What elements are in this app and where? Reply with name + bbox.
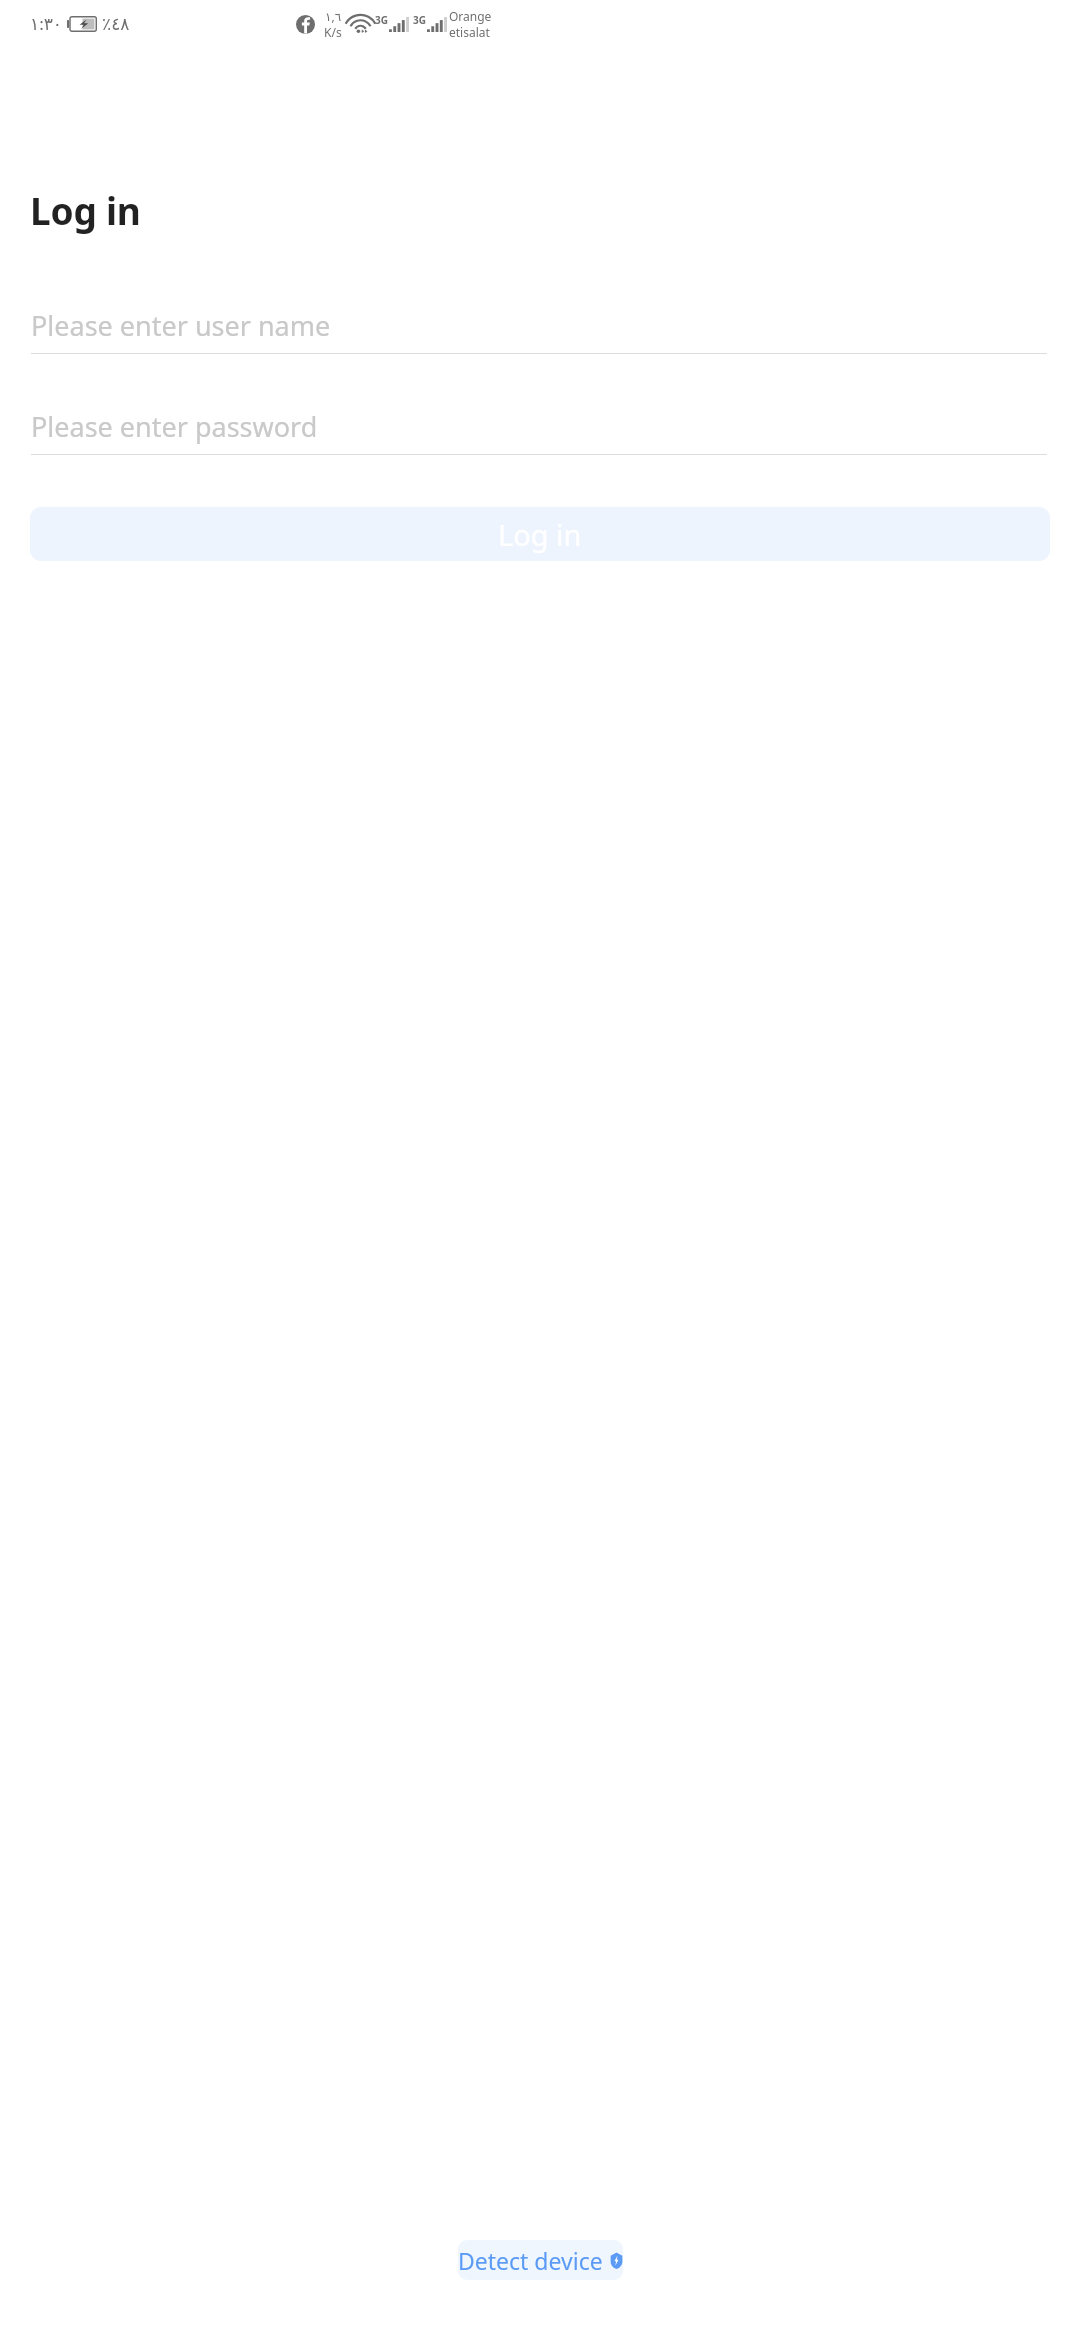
staticText: Log in (498, 515, 582, 554)
staticText: Please enter user name (31, 307, 331, 344)
button[interactable]: Detect device (458, 2240, 623, 2280)
staticText: Please enter password (31, 408, 318, 445)
staticText: ٪٤٨ (102, 14, 130, 34)
button[interactable]: Please enter user name (31, 298, 1047, 353)
staticText: etisalat (449, 24, 490, 40)
staticText: ١,٦ (325, 8, 342, 24)
staticText: Log in (30, 185, 141, 235)
staticText: Detect device (458, 2245, 603, 2276)
staticText: Orange (449, 8, 492, 24)
staticText: K/s (324, 24, 342, 40)
staticText: 3G (413, 13, 426, 27)
staticText: 3G (375, 13, 388, 27)
staticText: ١:٣٠ (30, 12, 62, 35)
button[interactable]: Please enter password (31, 399, 1047, 454)
